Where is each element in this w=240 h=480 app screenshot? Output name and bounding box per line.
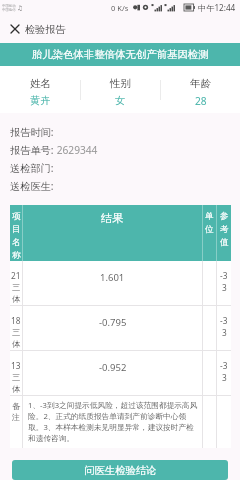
button[interactable]: 姓名 — [0, 66, 80, 113]
staticText: 3 — [222, 372, 227, 383]
staticText: 结果 — [101, 211, 124, 225]
staticText: 13 — [11, 360, 21, 371]
staticText: 黄卉 — [30, 94, 51, 107]
staticText: 目 — [12, 224, 21, 235]
staticText: 位 — [205, 224, 214, 235]
staticText: 名 — [12, 237, 21, 248]
staticText: 女 — [115, 94, 126, 107]
staticText: 年龄 — [190, 77, 211, 90]
staticText: 检验报告 — [25, 23, 66, 36]
staticText: 中午12:44 — [198, 2, 236, 13]
staticText: 值 — [220, 237, 229, 248]
staticText: 3 — [222, 282, 227, 293]
staticText: -3 — [220, 315, 228, 326]
staticText: 胎儿染色体非整倍体无创产前基因检测 — [32, 48, 209, 61]
button[interactable]: Close — [8, 22, 22, 36]
staticText: 称 — [12, 250, 21, 261]
staticText: 28 — [195, 94, 207, 108]
staticText: -3 — [220, 270, 228, 281]
staticText: 性别 — [110, 77, 131, 90]
button[interactable]: 问医生检验结论 — [12, 460, 228, 480]
staticText: -3 — [220, 360, 228, 371]
staticText: 1.601 — [100, 271, 125, 284]
staticText: 2629344 — [54, 143, 98, 157]
staticText: 问医生检验结论 — [84, 464, 157, 477]
staticText: 三 — [12, 282, 21, 292]
staticText: -0.952 — [99, 361, 127, 374]
staticText: 体 — [12, 384, 21, 394]
staticText: 单 — [205, 211, 214, 222]
staticText: 18 — [11, 315, 21, 326]
staticText: 考 — [220, 224, 229, 235]
staticText: 报告时间: — [10, 125, 54, 139]
staticText: 1、-3到3之间提示低风险，超过该范围都提示高风险。2、正式的纸质报告单请到产前… — [28, 400, 201, 443]
staticText: 中国电信 — [2, 8, 16, 12]
staticText: 备 — [12, 401, 20, 411]
staticText: 中国移动 — [2, 4, 16, 8]
staticText: 报告单号: — [10, 143, 54, 157]
button[interactable]: 年龄 — [161, 66, 240, 113]
staticText: 送检医生: — [10, 179, 54, 193]
staticText: 体 — [12, 294, 21, 304]
staticText: 体 — [12, 339, 21, 349]
staticText: 0 K/s — [111, 3, 129, 13]
staticText: 21 — [11, 270, 21, 281]
staticText: 姓名 — [30, 77, 51, 90]
staticText: 参 — [220, 211, 229, 222]
staticText: ♫ — [17, 4, 23, 12]
staticText: 三 — [12, 327, 21, 337]
staticText: 注 — [12, 412, 20, 422]
staticText: 送检部门: — [10, 161, 54, 175]
button[interactable]: 性别 — [81, 66, 160, 113]
staticText: 项 — [12, 211, 21, 222]
staticText: 三 — [12, 372, 21, 382]
staticText: -0.795 — [99, 316, 127, 329]
staticText: 3 — [222, 327, 227, 338]
